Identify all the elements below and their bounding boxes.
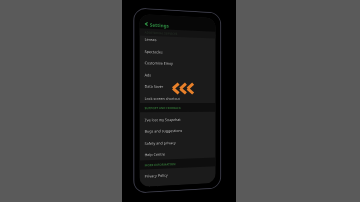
button[interactable]: Spectacles xyxy=(139,45,216,59)
button[interactable]: Safety Centre xyxy=(139,178,216,187)
button[interactable]: Ads xyxy=(139,68,216,81)
button[interactable]: Safety and privacy xyxy=(139,135,216,149)
button[interactable]: Lock screen shortcut xyxy=(139,92,216,104)
button[interactable]: Bugs and suggestions xyxy=(139,123,216,137)
staticText: Ads xyxy=(145,72,152,78)
staticText: Privacy Policy xyxy=(145,172,168,179)
staticText: I've lost my Snapchat xyxy=(145,117,181,122)
button[interactable]: Customise Emoji xyxy=(139,56,216,70)
staticText: SUPPORT AND FEEDBACK xyxy=(145,106,181,110)
staticText: Bugs and suggestions xyxy=(145,128,183,134)
button[interactable]: Back xyxy=(139,19,216,32)
staticText: ADDITIONAL SERVICES xyxy=(145,30,178,36)
staticText: Lenses xyxy=(145,37,157,42)
staticText: Lock screen shortcut xyxy=(145,96,180,101)
button[interactable]: I've lost my Snapchat xyxy=(139,113,216,126)
button[interactable]: Privacy Policy xyxy=(139,166,216,182)
staticText: Spectacles xyxy=(145,49,163,55)
button[interactable]: Help Centre xyxy=(139,146,216,160)
staticText: Customise Emoji xyxy=(145,60,174,66)
staticText: Help Centre xyxy=(145,151,166,157)
other: Back xyxy=(144,21,149,27)
button[interactable]: Lenses xyxy=(139,32,216,47)
staticText: Settings xyxy=(150,22,169,29)
button[interactable]: Data Saver xyxy=(139,79,216,92)
staticText: Safety and privacy xyxy=(145,140,176,146)
staticText: Data Saver xyxy=(145,84,164,89)
staticText: MORE INFORMATION xyxy=(145,162,176,167)
staticText: Safety Centre xyxy=(145,185,168,187)
